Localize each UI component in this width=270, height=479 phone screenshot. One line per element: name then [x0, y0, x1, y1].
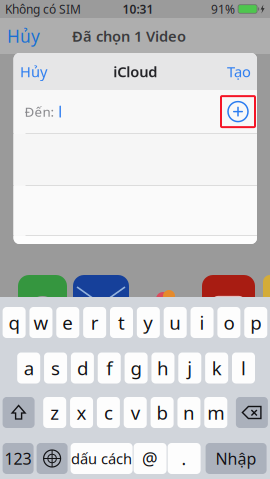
- button[interactable]: v: [124, 397, 147, 428]
- button[interactable]: Add recipient: [221, 96, 255, 127]
- button[interactable]: @: [134, 443, 167, 474]
- button[interactable]: Next keyboard: [37, 443, 68, 474]
- staticText: n: [183, 400, 195, 425]
- staticText: 123: [5, 448, 32, 469]
- button[interactable]: p: [244, 307, 267, 338]
- staticText: a: [24, 356, 34, 380]
- button[interactable]: a: [17, 352, 40, 383]
- staticText: Hủy: [7, 24, 40, 47]
- button[interactable]: s: [44, 352, 67, 383]
- button[interactable]: Tạo: [221, 56, 257, 87]
- staticText: o: [223, 310, 234, 335]
- button[interactable]: o: [217, 307, 240, 338]
- button[interactable]: k: [205, 352, 228, 383]
- staticText: Nhập: [216, 448, 257, 469]
- button[interactable]: Hủy: [14, 56, 53, 87]
- staticText: q: [9, 310, 20, 335]
- staticText: u: [169, 310, 181, 335]
- staticText: Tạo: [227, 62, 251, 81]
- button[interactable]: .: [168, 443, 201, 474]
- staticText: p: [250, 310, 261, 335]
- staticText: w: [33, 310, 48, 335]
- button[interactable]: j: [178, 352, 201, 383]
- staticText: d: [77, 356, 88, 380]
- button[interactable]: dấu cách: [71, 443, 133, 474]
- button[interactable]: y: [137, 307, 160, 338]
- staticText: Đến:: [24, 103, 54, 120]
- staticText: h: [157, 356, 169, 380]
- staticText: z: [50, 400, 59, 425]
- button[interactable]: Hủy: [0, 19, 47, 52]
- button[interactable]: x: [70, 397, 93, 428]
- button[interactable]: w: [29, 307, 52, 338]
- staticText: dấu cách: [71, 449, 132, 468]
- button[interactable]: i: [190, 307, 213, 338]
- button[interactable]: u: [164, 307, 187, 338]
- staticText: l: [241, 356, 246, 380]
- staticText: b: [157, 400, 168, 425]
- staticText: 91%: [211, 1, 235, 17]
- button[interactable]: l: [232, 352, 255, 383]
- button[interactable]: Nhập: [206, 443, 267, 474]
- staticText: Đã chọn 1 Video: [72, 26, 186, 46]
- button[interactable]: c: [97, 397, 120, 428]
- button[interactable]: h: [151, 352, 174, 383]
- staticText: k: [212, 356, 222, 380]
- button[interactable]: e: [56, 307, 79, 338]
- staticText: x: [77, 400, 87, 425]
- staticText: Hủy: [20, 62, 47, 81]
- staticText: v: [131, 400, 140, 425]
- button[interactable]: Delete: [236, 397, 268, 428]
- button[interactable]: z: [43, 397, 66, 428]
- button[interactable]: r: [83, 307, 106, 338]
- staticText: Không có SIM: [5, 1, 81, 17]
- button[interactable]: q: [3, 307, 26, 338]
- button[interactable]: d: [71, 352, 94, 383]
- staticText: f: [106, 356, 112, 380]
- button[interactable]: f: [98, 352, 121, 383]
- staticText: j: [187, 356, 192, 380]
- staticText: @: [142, 447, 158, 470]
- staticText: t: [118, 310, 125, 335]
- button[interactable]: n: [177, 397, 200, 428]
- staticText: e: [62, 310, 73, 335]
- button[interactable]: t: [110, 307, 133, 338]
- button[interactable]: 123: [3, 443, 34, 474]
- staticText: iCloud: [113, 62, 157, 81]
- button[interactable]: Shift: [3, 397, 35, 428]
- staticText: m: [207, 400, 224, 425]
- staticText: s: [51, 356, 60, 380]
- staticText: .: [182, 447, 187, 470]
- staticText: r: [91, 310, 99, 335]
- staticText: y: [143, 310, 153, 335]
- staticText: i: [199, 310, 204, 335]
- button[interactable]: b: [151, 397, 174, 428]
- button[interactable]: m: [204, 397, 227, 428]
- staticText: 10:31: [122, 1, 153, 17]
- staticText: c: [104, 400, 113, 425]
- button[interactable]: g: [125, 352, 148, 383]
- staticText: g: [131, 356, 142, 380]
